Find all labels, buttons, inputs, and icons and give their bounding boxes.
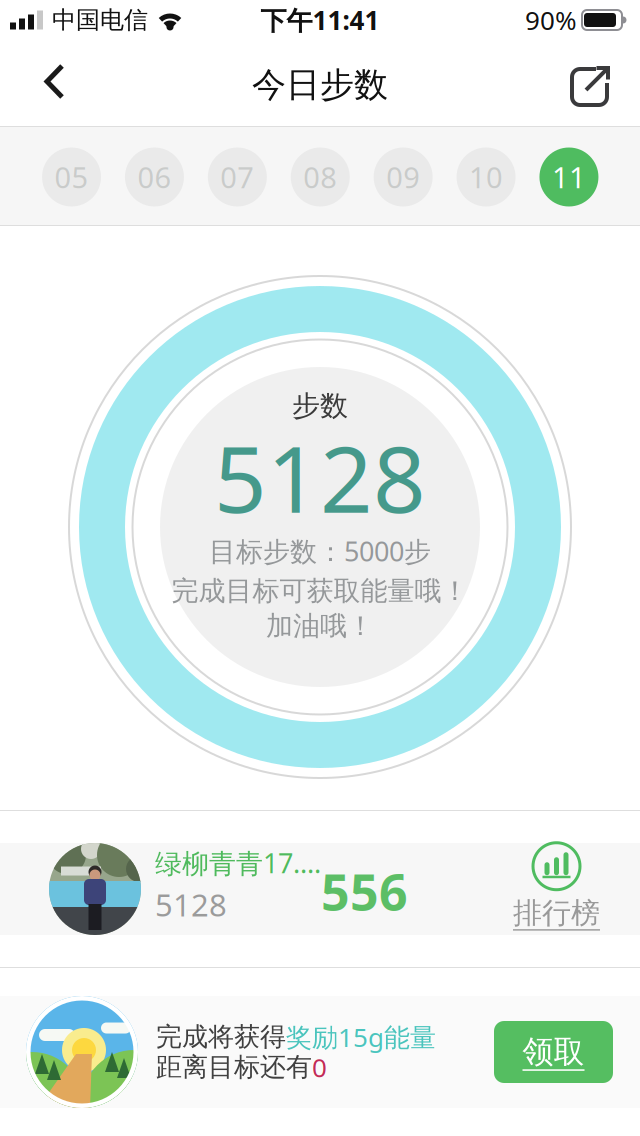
staticText: 排行榜: [513, 895, 600, 931]
staticText: 07: [220, 157, 254, 197]
staticText: 5128: [155, 883, 227, 925]
staticText: 08: [303, 157, 337, 197]
staticText: 奖励15g能量: [286, 1019, 436, 1054]
button[interactable]: Day 06: [125, 146, 184, 205]
button[interactable]: Day 10: [456, 146, 515, 205]
button[interactable]: Day 08: [291, 146, 350, 205]
staticText: 556: [321, 857, 408, 925]
button[interactable]: Day 09: [374, 146, 433, 205]
staticText: 09: [386, 157, 420, 197]
button[interactable]: 排行榜: [513, 845, 640, 933]
staticText: 今日步数: [252, 64, 388, 106]
staticText: 05: [54, 157, 88, 197]
staticText: 下午11:41: [260, 2, 379, 38]
button[interactable]: 领取: [494, 1021, 613, 1083]
staticText: 距离目标还有: [156, 1051, 312, 1084]
button[interactable]: Back: [0, 44, 68, 122]
staticText: 目标步数：5000步: [209, 533, 431, 569]
staticText: 加油哦！: [266, 609, 374, 643]
staticText: 11: [552, 157, 586, 197]
staticText: 绿柳青青17....: [155, 844, 321, 881]
staticText: 完成目标可获取能量哦！: [171, 574, 468, 608]
button[interactable]: Share: [570, 44, 640, 122]
button[interactable]: Day 07: [208, 146, 267, 205]
staticText: 中国电信: [52, 5, 148, 35]
staticText: 06: [137, 157, 171, 197]
staticText: 领取: [522, 1032, 584, 1072]
staticText: 0: [312, 1049, 327, 1085]
staticText: 步数: [292, 388, 348, 424]
button[interactable]: Day 11: [539, 146, 598, 205]
staticText: 10: [469, 157, 503, 197]
button[interactable]: Day 05: [42, 146, 101, 205]
staticText: 90%: [525, 2, 577, 38]
staticText: 完成将获得: [156, 1020, 286, 1053]
staticText: 5128: [214, 414, 426, 540]
